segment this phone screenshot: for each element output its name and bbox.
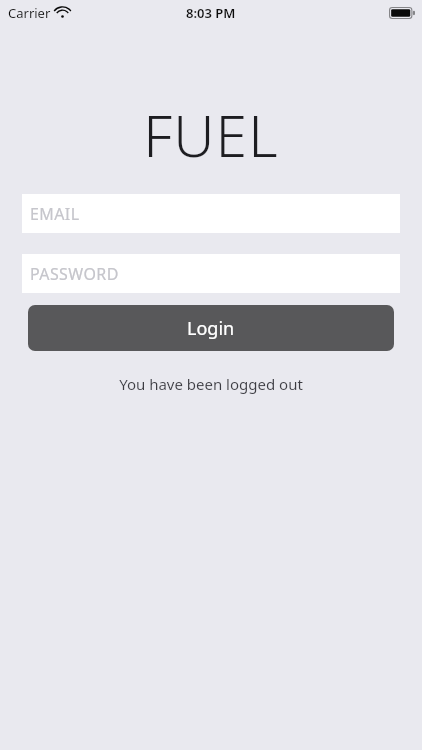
staticText: 8:03 PM [186, 4, 236, 22]
staticText: You have been logged out [0, 374, 422, 394]
button[interactable]: Login [28, 305, 394, 351]
staticText: Carrier [8, 4, 51, 22]
staticText: PASSWORD [30, 263, 119, 285]
staticText: EMAIL [30, 203, 80, 225]
staticText: Login [187, 316, 235, 341]
button[interactable]: PASSWORD [22, 254, 400, 293]
staticText: FUEL [0, 96, 422, 174]
button[interactable]: EMAIL [22, 194, 400, 233]
